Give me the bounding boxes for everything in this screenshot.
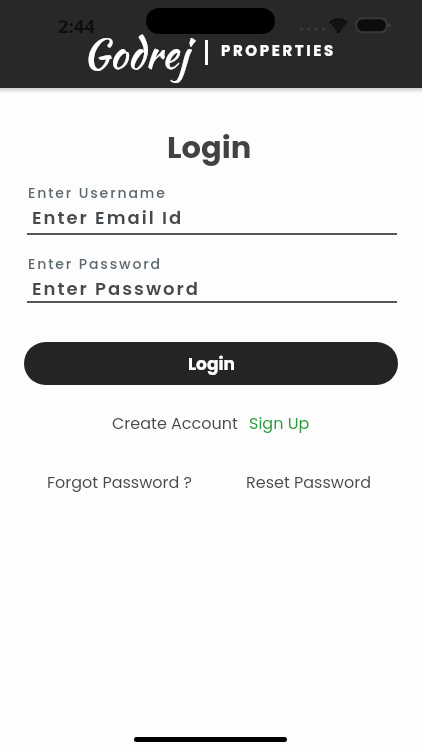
staticText: Enter Username bbox=[28, 183, 167, 203]
button[interactable]: Forgot Password ? bbox=[47, 471, 193, 493]
staticText: Enter Email Id bbox=[32, 205, 184, 230]
staticText: Reset Password bbox=[246, 471, 371, 493]
staticText: Godrej bbox=[83, 25, 189, 83]
button[interactable]: Login bbox=[24, 342, 398, 385]
staticText: Forgot Password ? bbox=[47, 471, 193, 493]
button[interactable]: Enter Password bbox=[27, 275, 397, 303]
staticText: Enter Password bbox=[32, 276, 201, 301]
button[interactable]: Reset Password bbox=[246, 471, 371, 493]
staticText: Create Account bbox=[112, 412, 238, 434]
staticText: 2:44 bbox=[58, 13, 95, 38]
staticText: Enter Password bbox=[28, 254, 163, 274]
staticText: Sign Up bbox=[249, 412, 310, 434]
staticText: PROPERTIES bbox=[221, 40, 336, 61]
staticText: Login bbox=[188, 352, 235, 376]
button[interactable]: Sign Up bbox=[249, 412, 310, 434]
staticText: Login bbox=[167, 126, 252, 169]
button[interactable]: Enter Email Id bbox=[27, 204, 397, 231]
